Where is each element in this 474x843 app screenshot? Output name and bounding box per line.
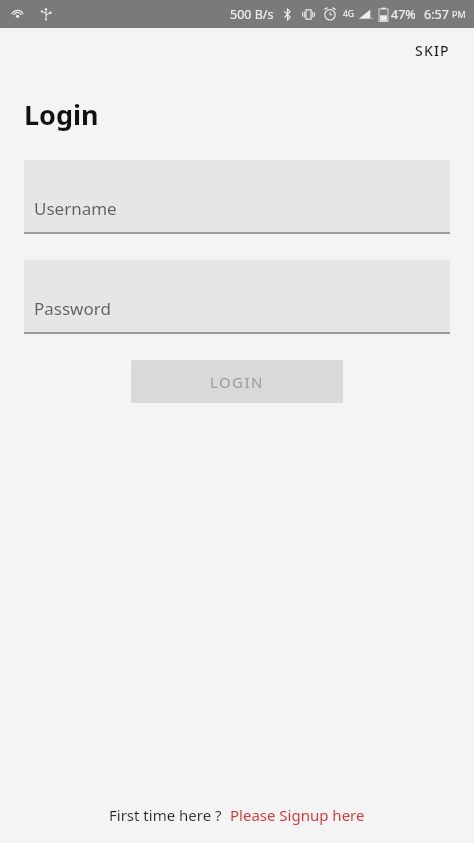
staticText: 47% bbox=[391, 6, 416, 23]
staticText: 500 B/s bbox=[230, 6, 274, 23]
staticText: Username bbox=[34, 197, 117, 220]
button[interactable]: LOGIN bbox=[131, 360, 343, 403]
staticText: 6:57 bbox=[424, 6, 449, 23]
staticText: SKIP bbox=[415, 41, 450, 60]
staticText: LOGIN bbox=[210, 372, 264, 392]
staticText: Login bbox=[24, 96, 99, 133]
button[interactable]: Please Signup here bbox=[230, 805, 365, 825]
staticText: Please Signup here bbox=[230, 805, 365, 825]
staticText: First time here ? bbox=[109, 805, 222, 825]
staticText: 4G bbox=[343, 8, 355, 20]
button[interactable]: SKIP bbox=[391, 31, 474, 70]
button[interactable]: Username bbox=[24, 160, 450, 234]
staticText: Password bbox=[34, 297, 111, 320]
button[interactable]: Password bbox=[24, 260, 450, 334]
staticText: PM bbox=[452, 8, 466, 20]
